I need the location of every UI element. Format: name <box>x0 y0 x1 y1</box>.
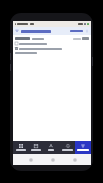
other: Filter <box>15 29 19 33</box>
button[interactable]: Sort and filter <box>75 141 91 154</box>
button[interactable]: Filter <box>13 27 91 35</box>
button[interactable]: Coverages <box>13 141 28 154</box>
button[interactable]: Show staff <box>59 141 75 154</box>
button[interactable] <box>15 42 89 45</box>
button[interactable]: More options <box>85 29 89 33</box>
button[interactable] <box>15 52 89 54</box>
button[interactable]: Staff <box>43 141 59 154</box>
other: Selected <box>15 47 18 50</box>
button[interactable] <box>15 37 89 40</box>
button[interactable]: Calendar <box>28 141 43 154</box>
button[interactable]: Back <box>28 157 33 162</box>
button[interactable]: Home <box>50 157 55 162</box>
button[interactable]: Recents <box>72 157 77 162</box>
button[interactable]: Selected <box>15 47 89 50</box>
